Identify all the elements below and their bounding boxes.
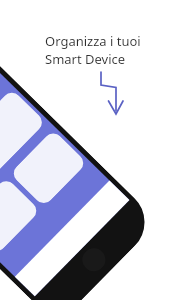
staticText: Organizza i tuoi [45,32,141,50]
button[interactable] [0,89,46,214]
button[interactable] [0,177,40,255]
button[interactable] [10,129,87,207]
staticText: Smart Device [45,50,126,68]
